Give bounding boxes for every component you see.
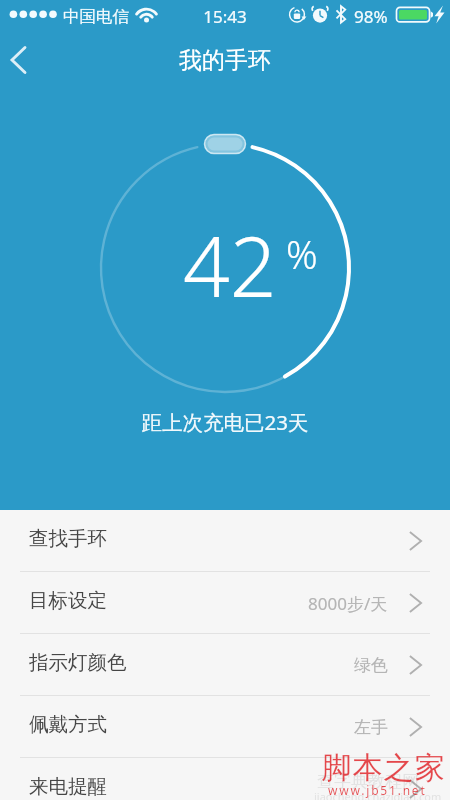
staticText: 查字典教程网 bbox=[317, 771, 419, 792]
button[interactable]: Back bbox=[0, 35, 50, 85]
button[interactable]: 来电提醒 bbox=[0, 758, 450, 800]
staticText: 98% bbox=[354, 5, 388, 28]
staticText: 查找手环 bbox=[29, 526, 107, 551]
staticText: 指示灯颜色 bbox=[29, 650, 127, 675]
staticText: 42 bbox=[183, 209, 277, 321]
button[interactable]: 目标设定 bbox=[0, 572, 450, 634]
button[interactable]: 指示灯颜色 bbox=[0, 634, 450, 696]
staticText: 中国电信 bbox=[63, 6, 129, 27]
staticText: 我的手环 bbox=[0, 46, 450, 75]
staticText: jiaocheng.chazidian.com bbox=[314, 789, 442, 800]
staticText: 脚本之家 bbox=[321, 749, 445, 787]
staticText: 距上次充电已23天 bbox=[0, 408, 450, 436]
staticText: 佩戴方式 bbox=[29, 712, 107, 737]
button[interactable]: 查找手环 bbox=[0, 510, 450, 572]
staticText: 15:43 bbox=[0, 5, 450, 28]
staticText: 左手 bbox=[354, 717, 388, 738]
staticText: 来电提醒 bbox=[29, 774, 107, 799]
button[interactable]: 佩戴方式 bbox=[0, 696, 450, 758]
staticText: 绿色 bbox=[354, 655, 388, 676]
staticText: 8000步/天 bbox=[308, 592, 388, 615]
staticText: www.jb51.net bbox=[328, 782, 427, 798]
staticText: % bbox=[286, 227, 318, 280]
staticText: 目标设定 bbox=[29, 588, 107, 613]
